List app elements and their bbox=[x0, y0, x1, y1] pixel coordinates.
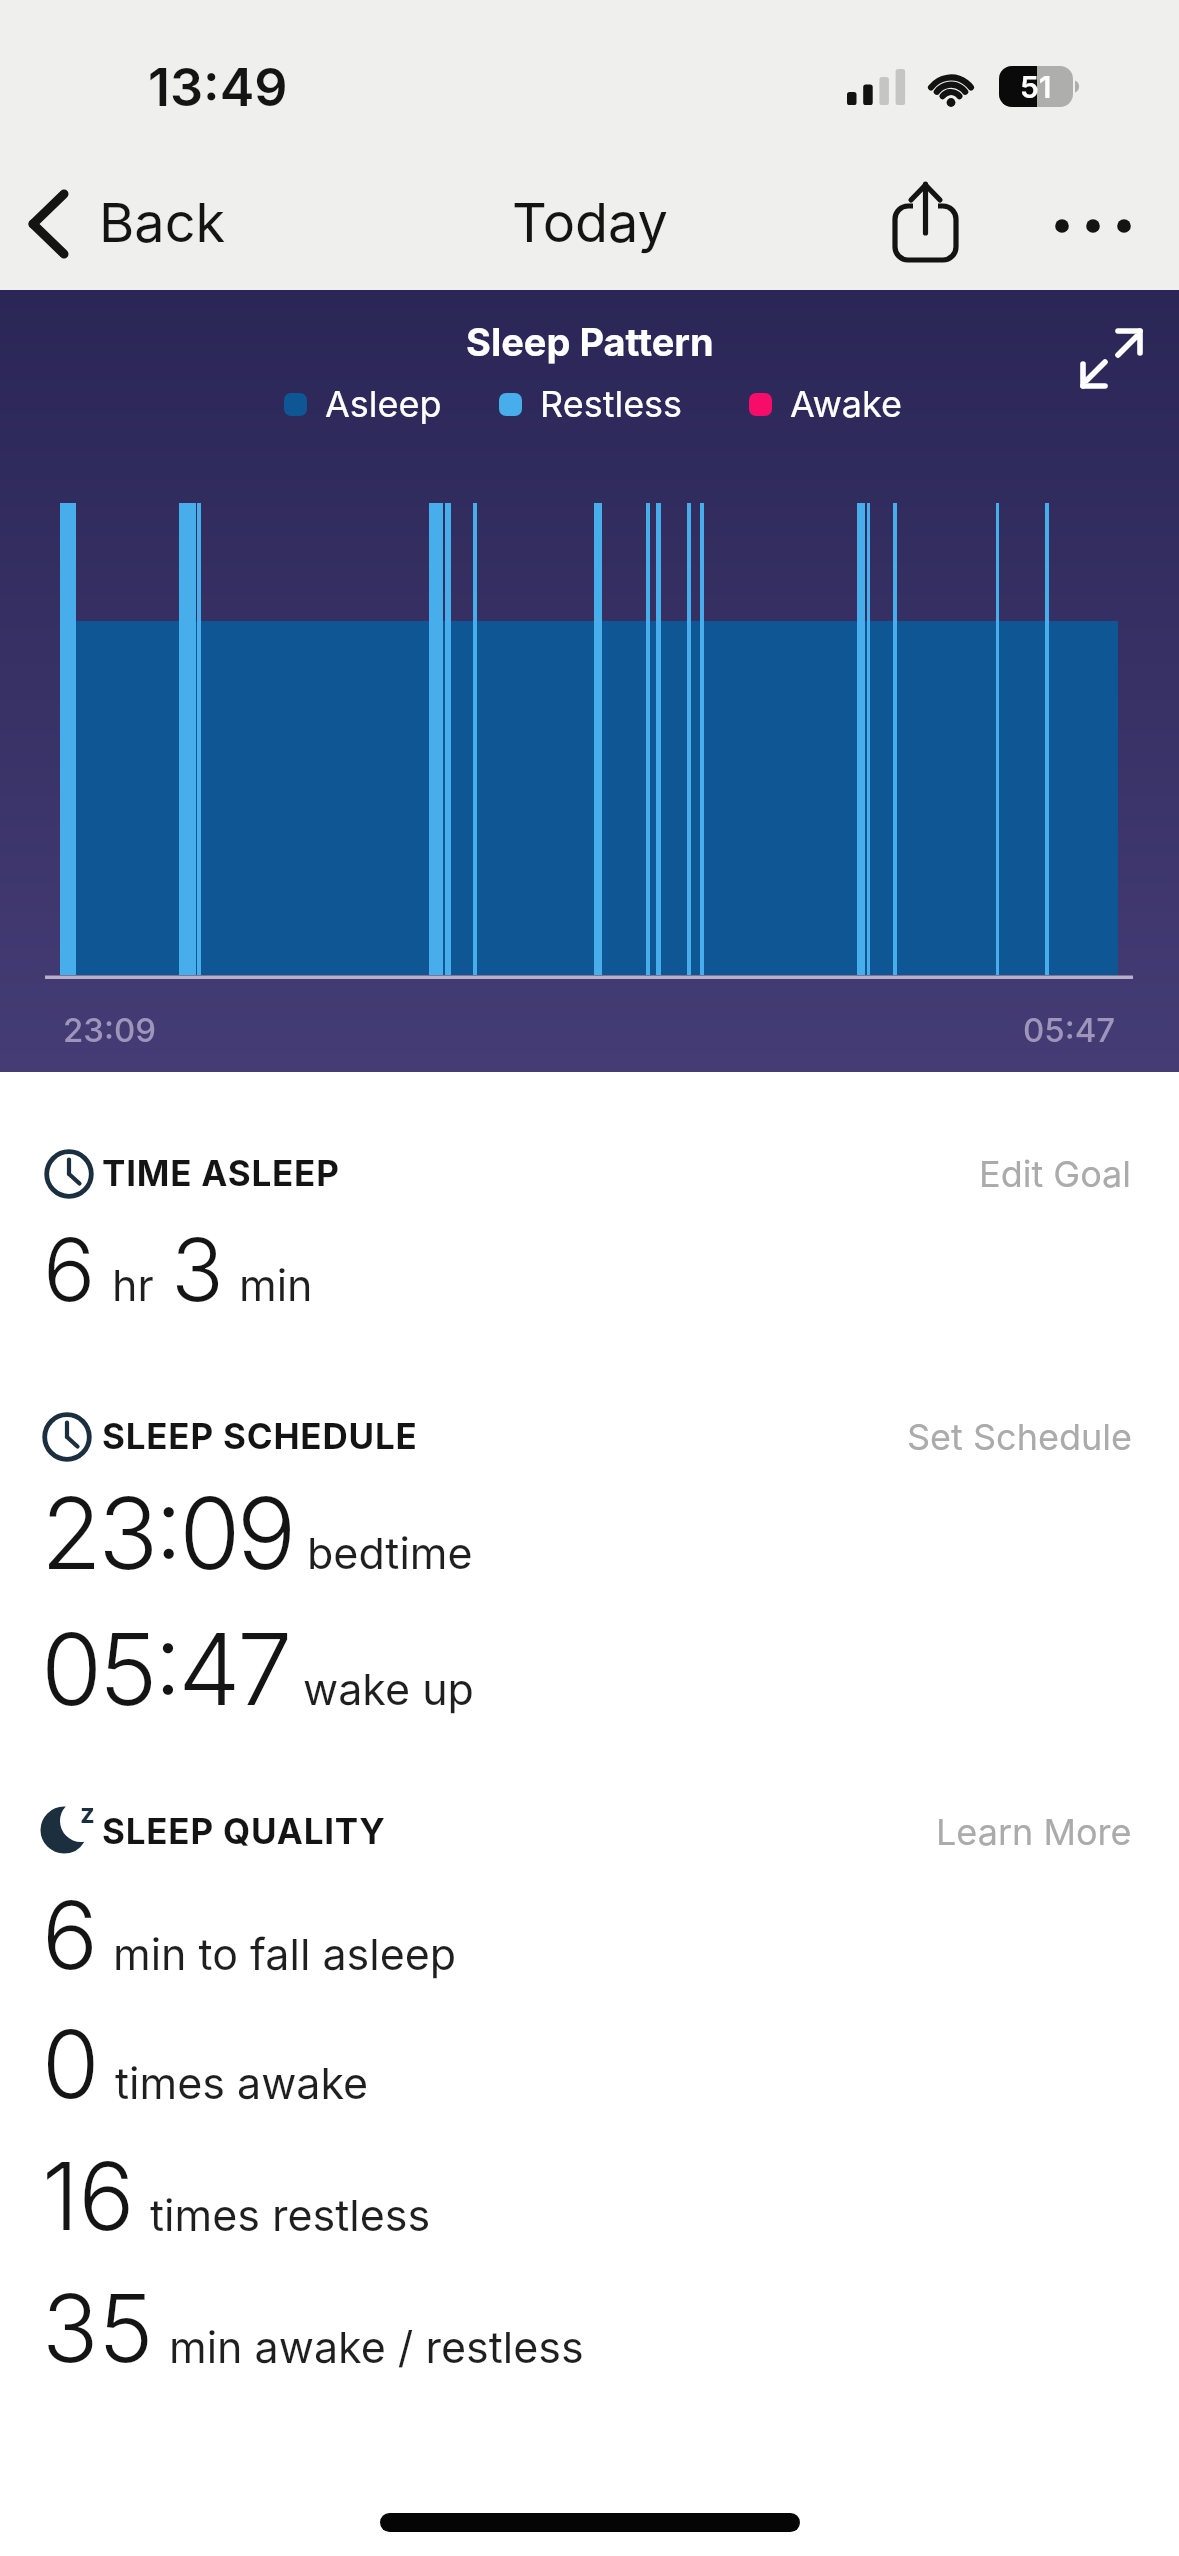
staticText: Asleep bbox=[325, 382, 442, 426]
staticText: Learn More bbox=[936, 1810, 1132, 1854]
staticText: min to fall asleep bbox=[113, 1928, 457, 1980]
staticText: 23:09 bbox=[41, 1473, 293, 1593]
staticText: hr bbox=[112, 1259, 154, 1311]
staticText: times restless bbox=[150, 2189, 431, 2241]
staticText: TIME ASLEEP bbox=[102, 1152, 340, 1194]
staticText: 23:09 bbox=[63, 1010, 157, 1050]
staticText: 3 bbox=[171, 1217, 224, 1322]
staticText: Restless bbox=[540, 382, 683, 426]
staticText: SLEEP QUALITY bbox=[102, 1810, 386, 1852]
button[interactable] bbox=[1040, 195, 1145, 257]
button[interactable] bbox=[880, 170, 975, 275]
staticText: bedtime bbox=[307, 1527, 473, 1579]
staticText: 51 bbox=[1020, 69, 1052, 105]
staticText: Back bbox=[99, 190, 226, 255]
button[interactable]: Edit Goal bbox=[632, 1152, 1132, 1196]
staticText: Awake bbox=[790, 382, 903, 426]
staticText: 05:47 bbox=[41, 1609, 289, 1729]
staticText: 13:49 bbox=[148, 56, 288, 119]
staticText: Edit Goal bbox=[979, 1152, 1132, 1196]
staticText: Sleep Pattern bbox=[466, 319, 714, 365]
staticText: 05:47 bbox=[1023, 1010, 1116, 1050]
staticText: wake up bbox=[303, 1663, 474, 1715]
staticText: min bbox=[239, 1259, 313, 1311]
button[interactable]: Back bbox=[20, 180, 230, 266]
staticText: min awake / restless bbox=[169, 2321, 584, 2373]
staticText: 35 bbox=[42, 2272, 154, 2385]
staticText: times awake bbox=[115, 2057, 369, 2109]
button[interactable]: Learn More bbox=[632, 1810, 1132, 1854]
button[interactable]: Set Schedule bbox=[632, 1415, 1132, 1459]
staticText: Set Schedule bbox=[907, 1415, 1132, 1459]
button[interactable] bbox=[1072, 316, 1148, 396]
staticText: z bbox=[80, 1798, 95, 1829]
staticText: SLEEP SCHEDULE bbox=[102, 1415, 418, 1457]
staticText: 6 bbox=[43, 1217, 96, 1322]
staticText: 16 bbox=[42, 2140, 135, 2253]
staticText: 0 bbox=[42, 2008, 100, 2121]
staticText: 6 bbox=[42, 1879, 98, 1992]
staticText: Today bbox=[512, 190, 668, 255]
